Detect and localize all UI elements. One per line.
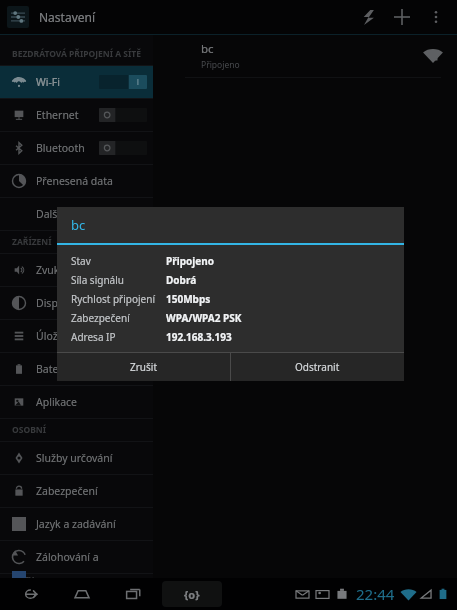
button[interactable]: Back	[12, 578, 48, 610]
staticText: Připojeno	[201, 59, 240, 71]
staticText: Nastavení	[39, 9, 96, 25]
staticText: Zabezpečení	[71, 311, 130, 325]
staticText: Služby určování polohy	[36, 451, 147, 465]
staticText: ZAŘÍZENÍ	[12, 236, 52, 248]
button[interactable]: Zálohování a obnovení dat	[0, 541, 153, 573]
staticText: WPA/WPA2 PSK	[166, 311, 242, 325]
staticText: 192.168.3.193	[166, 330, 232, 344]
staticText: Displej	[36, 296, 147, 310]
staticText: Bluetooth	[36, 141, 99, 155]
staticText: Zálohování a obnovení dat	[36, 550, 147, 564]
staticText: Síla signálu	[71, 273, 124, 287]
staticText: Připojeno	[166, 254, 214, 268]
staticText: Adresa IP	[71, 330, 116, 344]
staticText: 22:44	[356, 584, 395, 604]
staticText: ÚČTY	[12, 574, 35, 578]
button[interactable]: Zvuk	[0, 254, 153, 286]
staticText: Další...	[36, 207, 147, 221]
staticText: Zrušit	[130, 360, 158, 374]
staticText: Wi-Fi	[36, 75, 99, 89]
button[interactable]: Odstranit	[231, 353, 404, 381]
staticText: {o}	[184, 587, 200, 602]
staticText: bc	[201, 41, 214, 57]
button[interactable]: Zrušit	[57, 353, 230, 381]
button[interactable]: Zabezpečení	[0, 475, 153, 507]
staticText: Jazyk a zadávání	[36, 517, 147, 531]
button[interactable]: Scan	[351, 0, 385, 34]
staticText: Rychlost připojení	[71, 292, 155, 306]
button[interactable]: Home	[64, 578, 100, 610]
button[interactable]: bc	[153, 35, 457, 77]
staticText: Odstranit	[295, 360, 340, 374]
button[interactable]: Displej	[0, 287, 153, 319]
button[interactable]: Wi-Fi	[0, 66, 153, 98]
button[interactable]: Jazyk a zadávání	[0, 508, 153, 540]
button[interactable]: Služby určování polohy	[0, 442, 153, 474]
staticText: Ethernet	[36, 108, 99, 122]
staticText: bc	[71, 216, 86, 234]
button[interactable]: Bluetooth	[0, 132, 153, 164]
button[interactable]: Úložiště	[0, 320, 153, 352]
button[interactable]: Baterie	[0, 353, 153, 385]
staticText: BEZDRÁTOVÁ PŘIPOJENÍ A SÍTĚ	[12, 48, 141, 60]
staticText: Zabezpečení	[36, 484, 147, 498]
staticText: Aplikace	[36, 395, 147, 409]
button[interactable]: Add network	[385, 0, 419, 34]
staticText: Zvuk	[36, 263, 147, 277]
staticText: 150Mbps	[166, 292, 211, 306]
button[interactable]: Ethernet	[0, 99, 153, 131]
button[interactable]: More options	[419, 0, 453, 34]
staticText: OSOBNÍ	[12, 424, 47, 436]
button[interactable]: Settings app icon	[7, 6, 29, 28]
button[interactable]: Aplikace	[0, 386, 153, 418]
staticText: Stav	[71, 254, 91, 268]
staticText: Baterie	[36, 362, 147, 376]
button[interactable]: Screenshot	[162, 581, 222, 607]
staticText: Dobrá	[166, 273, 197, 287]
staticText: Přenesená data	[36, 174, 147, 188]
button[interactable]: Přenesená data	[0, 165, 153, 197]
staticText: Úložiště	[36, 329, 147, 343]
button[interactable]: Recent apps	[116, 578, 152, 610]
button[interactable]: Další...	[0, 198, 153, 230]
